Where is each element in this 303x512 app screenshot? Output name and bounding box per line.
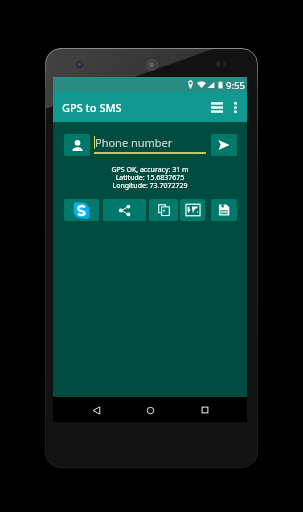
- button[interactable]: Copy: [149, 199, 178, 221]
- button[interactable]: Recent apps: [193, 398, 217, 422]
- button[interactable]: Save: [211, 199, 237, 221]
- button[interactable]: Saved locations: [207, 97, 227, 117]
- staticText: GPS to SMS: [62, 100, 122, 115]
- button[interactable]: Send SMS: [211, 134, 237, 156]
- button[interactable]: Back: [84, 398, 108, 422]
- button[interactable]: Pick contact: [64, 134, 90, 156]
- staticText: 9:55: [226, 79, 245, 92]
- staticText: Phone number: [95, 135, 173, 150]
- button[interactable]: Home: [138, 398, 162, 422]
- button[interactable]: Open map: [180, 199, 205, 221]
- button[interactable]: Share: [103, 199, 146, 221]
- button[interactable]: Send to Skype: [64, 199, 99, 221]
- staticText: GPS OK, accuracy: 31 m Latitude: 15.6837…: [53, 165, 247, 190]
- button[interactable]: More options: [227, 97, 243, 117]
